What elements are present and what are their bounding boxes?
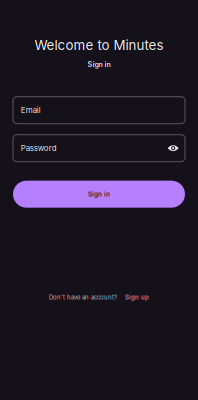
button[interactable]: Sign in xyxy=(13,181,185,208)
staticText: Password xyxy=(21,143,57,153)
button[interactable]: Password xyxy=(13,135,185,162)
staticText: Email xyxy=(21,105,41,115)
staticText: Sign in xyxy=(87,60,110,69)
staticText: Welcome to Minutes xyxy=(34,37,163,53)
button[interactable]: Sign up xyxy=(125,294,149,301)
staticText: Sign up xyxy=(125,294,149,301)
staticText: Sign in xyxy=(88,190,110,198)
button[interactable]: Email xyxy=(13,97,185,124)
staticText: Don't have an account? xyxy=(49,294,117,301)
